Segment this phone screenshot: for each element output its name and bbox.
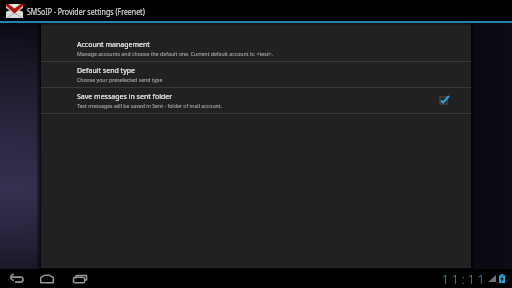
staticText: Account management: [77, 40, 150, 50]
button[interactable]: Home: [38, 269, 56, 288]
staticText: Default send type: [77, 66, 135, 76]
button[interactable]: Account management: [41, 36, 471, 61]
button[interactable]: Save messages in sent folder: [41, 88, 471, 113]
staticText: Save messages in sent folder: [77, 92, 173, 102]
staticText: Manage accounts and choose the default o…: [77, 50, 273, 57]
button[interactable]: Default send type: [41, 62, 471, 87]
button[interactable]: Recent apps: [71, 269, 89, 288]
staticText: Choose your preselected send type: [77, 76, 163, 83]
button[interactable]: Back: [7, 269, 25, 288]
staticText: 11:11: [442, 271, 488, 287]
staticText: Text messages will be saved in Sent - fo…: [77, 102, 223, 109]
staticText: SMSoIP - Provider settings (Freenet): [27, 5, 145, 17]
